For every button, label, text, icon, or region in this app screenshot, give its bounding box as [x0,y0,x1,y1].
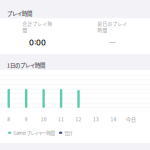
staticText: 前日のプレイ時間 [97,20,127,33]
staticText: — [109,38,115,46]
staticText: 14 [110,115,116,122]
staticText: 合計 [64,130,72,136]
staticText: 合計プレイ時間 [22,20,52,33]
staticText: 11 [58,115,64,122]
staticText: 10 [41,115,47,122]
staticText: 今日 [126,115,136,122]
staticText: プレイ時間 [7,9,32,17]
staticText: 8 [7,115,10,122]
staticText: 0:00 [29,38,46,47]
staticText: 12 [75,115,81,122]
staticText: Gamesプレイヤー時間 [13,130,54,136]
staticText: 9 [25,115,28,122]
staticText: 1日のプレイ時間 [7,61,45,69]
staticText: 13 [93,115,99,122]
